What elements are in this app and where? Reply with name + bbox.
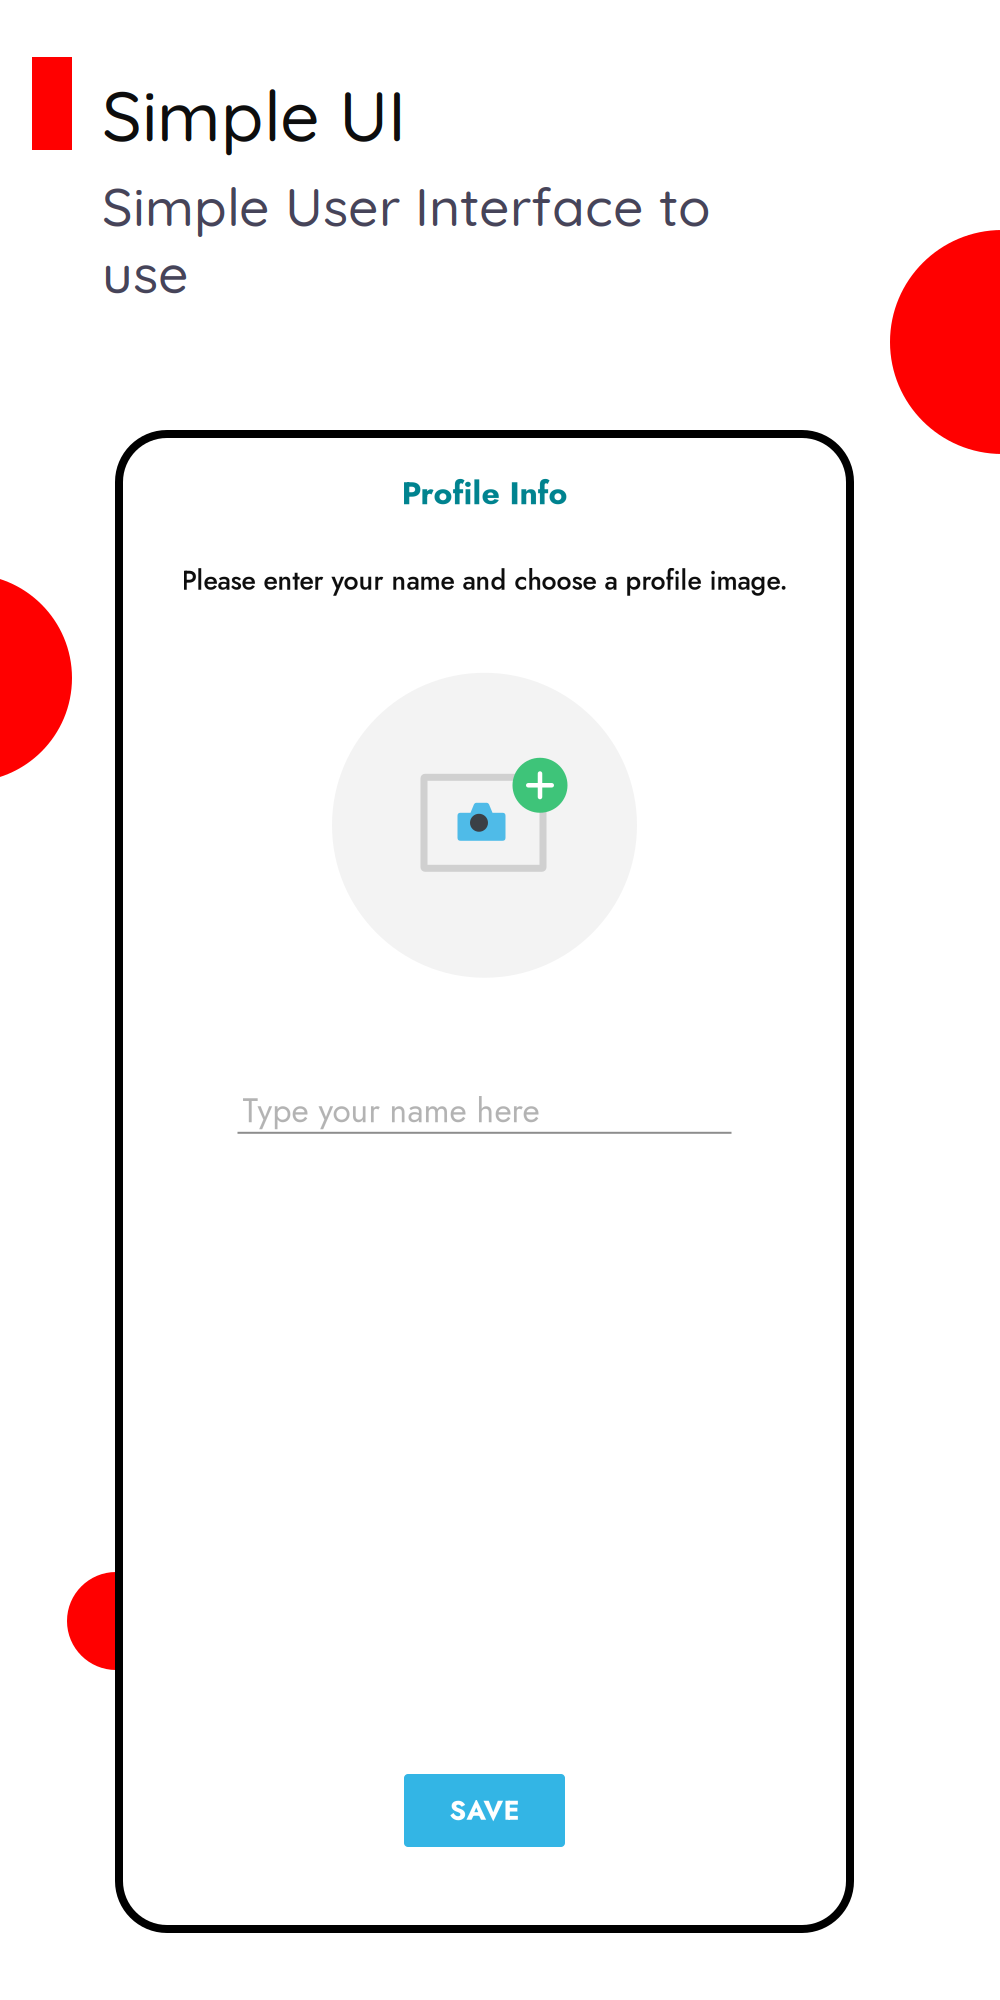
staticText: Type your name here	[242, 1087, 539, 1135]
staticText: Profile Info	[401, 470, 567, 516]
button[interactable]: Choose profile image	[332, 673, 637, 978]
button[interactable]: SAVE	[404, 1774, 565, 1847]
staticText: Simple User Interface to use	[102, 173, 711, 306]
staticText: Please enter your name and choose a prof…	[181, 561, 787, 600]
staticText: Simple UI	[102, 72, 406, 159]
staticText: SAVE	[449, 1791, 519, 1830]
button[interactable]: Type your name here	[237, 1094, 731, 1134]
